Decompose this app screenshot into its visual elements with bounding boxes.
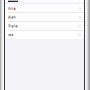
button[interactable]: Relay: [5, 4, 84, 13]
staticText: Display: [8, 24, 17, 28]
staticText: Misc: [8, 33, 13, 37]
staticText: Relay: [8, 7, 15, 10]
button[interactable]: Misc: [5, 31, 84, 39]
staticText: Alarm: [8, 16, 15, 19]
button[interactable]: Display: [5, 22, 84, 31]
button[interactable]: Alarm: [5, 13, 84, 22]
